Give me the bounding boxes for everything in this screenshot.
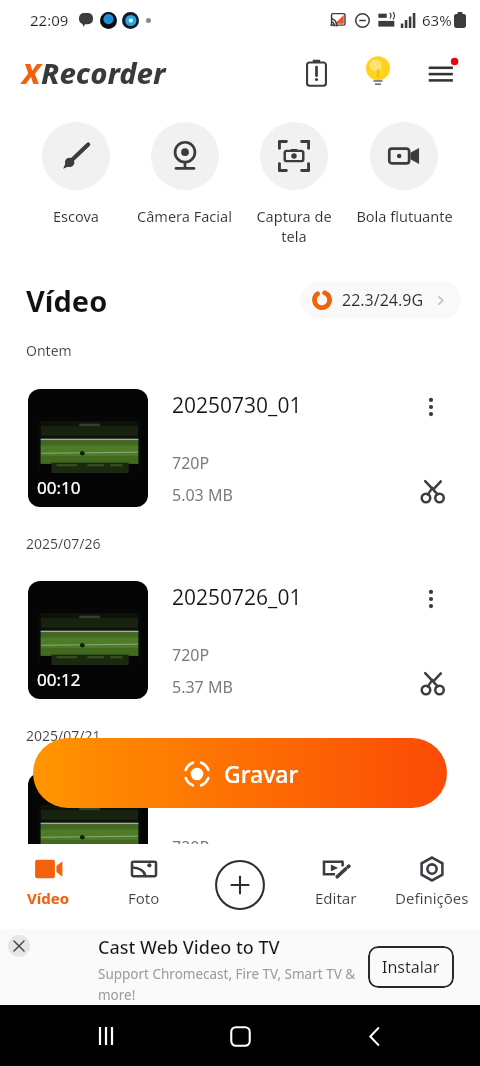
staticText: Foto (128, 888, 160, 908)
button[interactable]: 00:12 (0, 581, 480, 699)
button[interactable]: Bola flutuante (349, 122, 459, 226)
button[interactable]: Editar (288, 856, 384, 908)
staticText: 00:10 (37, 476, 81, 499)
staticText: 00:12 (37, 668, 81, 691)
staticText: 720P (172, 452, 210, 474)
staticText: 720P (172, 644, 210, 666)
button[interactable]: Trim (413, 663, 453, 703)
button[interactable]: Tips (356, 50, 400, 94)
button[interactable]: Vídeo (0, 856, 96, 908)
button[interactable]: Gravar (33, 738, 447, 808)
staticText: Câmera Facial (137, 206, 232, 226)
button[interactable]: 00:15 (0, 773, 480, 891)
staticText: 63% (422, 10, 452, 30)
button[interactable]: Battery saver (294, 50, 338, 94)
staticText: Definições (395, 888, 469, 908)
staticText: Bola flutuante (356, 206, 453, 226)
button[interactable]: Close ad (8, 935, 30, 957)
staticText: 22.3/24.9G (342, 289, 424, 311)
staticText: 20250721_01 (172, 775, 302, 804)
button[interactable]: 22.3/24.9G (300, 282, 461, 318)
button[interactable]: More options (411, 579, 451, 619)
staticText: Cast Web Video to TV (98, 935, 280, 960)
button[interactable]: Back (350, 1012, 398, 1060)
button[interactable]: Recents (82, 1012, 130, 1060)
staticText: Support Chromecast, Fire TV, Smart TV & … (98, 965, 356, 1004)
button[interactable]: More options (411, 387, 451, 427)
staticText: Recorder (41, 53, 166, 92)
staticText: 20250726_01 (172, 583, 302, 612)
staticText: Instalar (382, 956, 440, 978)
staticText: 720P (172, 836, 210, 858)
button[interactable]: Menu (420, 50, 464, 94)
button[interactable]: Definições (384, 856, 480, 908)
button[interactable]: New recording (213, 858, 267, 912)
button[interactable]: Trim (413, 855, 453, 895)
button[interactable]: 00:10 (0, 389, 480, 507)
staticText: 2025/07/21 (26, 726, 101, 745)
staticText: Gravar (224, 758, 299, 789)
staticText: 6.01 MB (172, 868, 233, 890)
button[interactable]: Captura de tela (239, 122, 349, 247)
staticText: 5.03 MB (172, 484, 233, 506)
button[interactable]: Trim (413, 471, 453, 511)
button[interactable]: Escova (21, 122, 130, 226)
button[interactable]: Home (216, 1012, 264, 1060)
staticText: Vídeo (27, 888, 70, 908)
button[interactable]: Instalar (368, 946, 454, 988)
staticText: 2025/07/26 (26, 534, 101, 553)
staticText: 00:15 (37, 860, 81, 883)
staticText: Captura de tela (256, 206, 332, 247)
staticText: Ontem (26, 341, 72, 360)
staticText: Editar (315, 888, 357, 908)
staticText: 5.37 MB (172, 676, 233, 698)
staticText: X (22, 53, 41, 92)
staticText: Vídeo (26, 281, 108, 320)
button[interactable]: Câmera Facial (130, 122, 239, 226)
button[interactable]: More options (411, 771, 451, 811)
staticText: 22:09 (30, 10, 69, 30)
button[interactable]: Foto (96, 856, 192, 908)
staticText: 20250730_01 (172, 391, 302, 420)
staticText: Escova (53, 206, 99, 226)
